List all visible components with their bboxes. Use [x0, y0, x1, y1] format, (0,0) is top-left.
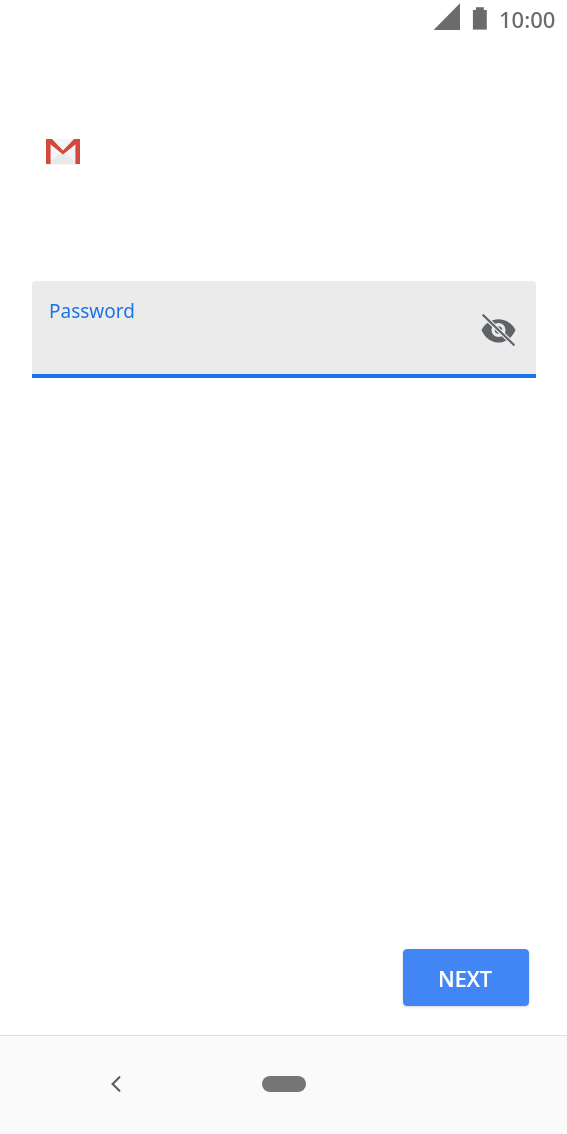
staticText: 10:00	[499, 4, 556, 34]
button[interactable]: NEXT	[403, 949, 529, 1006]
button[interactable]: Home	[248, 1065, 320, 1105]
button[interactable]: Show password	[474, 306, 522, 354]
staticText: Password	[49, 298, 135, 324]
button[interactable]: Password	[32, 281, 536, 374]
staticText: NEXT	[438, 964, 492, 993]
button[interactable]: Back	[92, 1060, 140, 1108]
